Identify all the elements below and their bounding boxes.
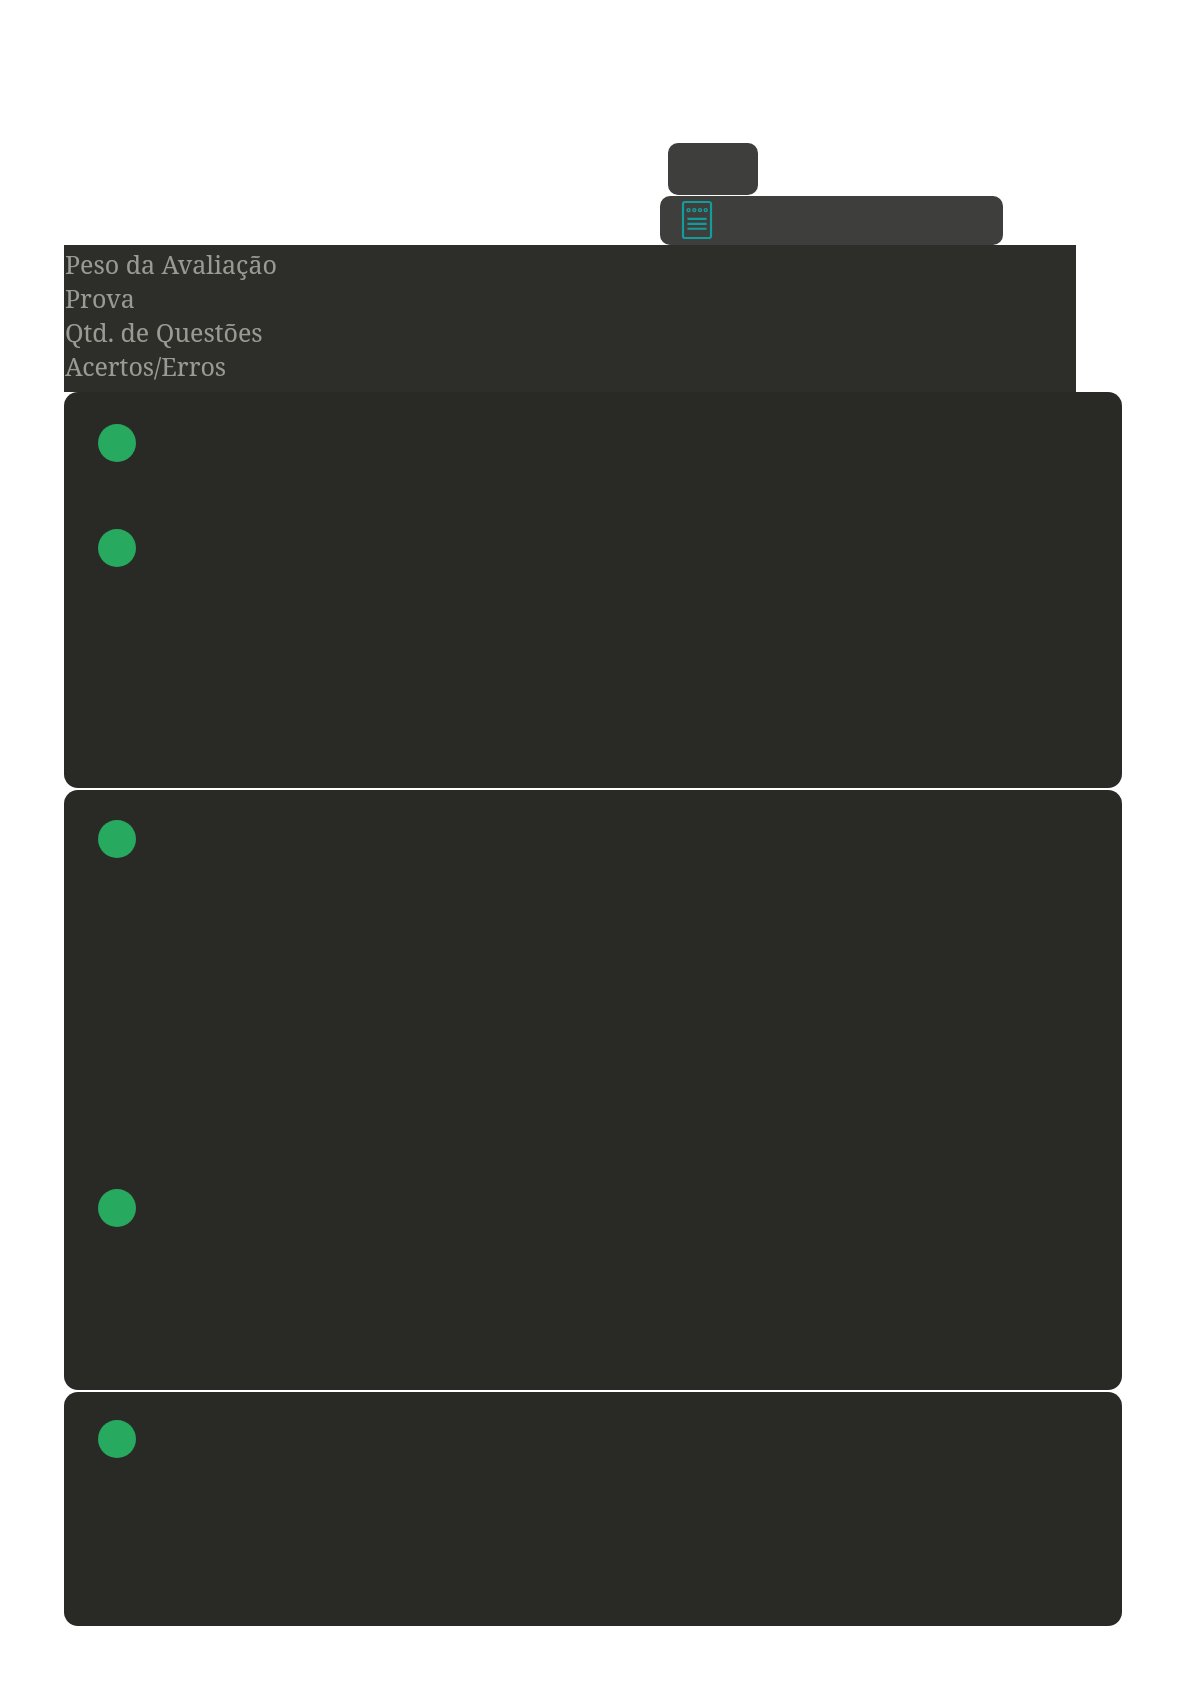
staticText: Prova (65, 281, 135, 315)
button[interactable]: Menu (668, 143, 758, 195)
button[interactable]: Lista de provas (682, 201, 712, 239)
button[interactable] (64, 790, 1122, 1390)
button[interactable]: Lista de provas (660, 196, 1003, 245)
staticText: Peso da Avaliação (65, 247, 277, 281)
staticText: Acertos/Erros (65, 349, 227, 383)
button[interactable] (64, 392, 1122, 788)
button[interactable] (64, 1392, 1122, 1626)
staticText: Qtd. de Questões (65, 315, 263, 349)
